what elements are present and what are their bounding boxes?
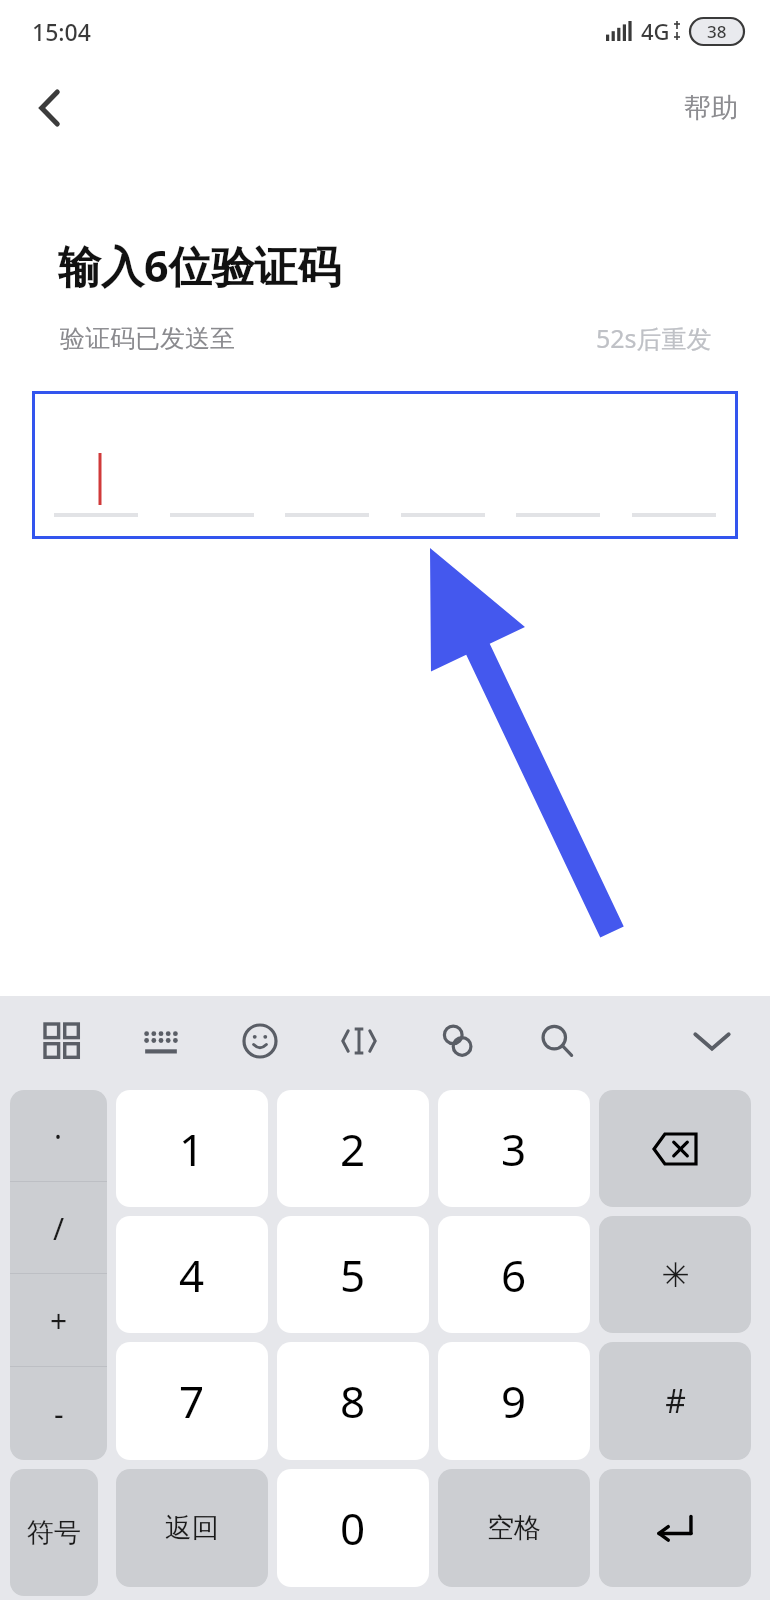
button[interactable]: 符号	[10, 1469, 98, 1596]
staticText: 1	[179, 1119, 205, 1179]
button[interactable]: +	[10, 1274, 107, 1367]
staticText: 2	[340, 1119, 366, 1179]
staticText: 4G	[641, 16, 670, 46]
button[interactable]: Enter	[599, 1469, 751, 1587]
staticText: 52s后重发	[596, 321, 712, 355]
staticText: /	[53, 1208, 65, 1249]
button[interactable]	[32, 391, 738, 539]
button[interactable]: Backspace	[599, 1090, 751, 1207]
staticText: 38	[707, 20, 727, 43]
staticText: 空格	[487, 1511, 541, 1545]
button[interactable]: 帮助	[672, 83, 750, 133]
button[interactable]: Move cursor	[327, 1009, 391, 1073]
button[interactable]: 4	[116, 1216, 268, 1333]
button[interactable]: Keyboard layout	[129, 1009, 193, 1073]
staticText: #	[665, 1379, 686, 1423]
button[interactable]: 0	[277, 1469, 429, 1587]
staticText: +	[50, 1300, 68, 1341]
button[interactable]: /	[10, 1182, 107, 1274]
staticText: 验证码已发送至	[60, 323, 235, 354]
staticText: 7	[179, 1371, 205, 1431]
staticText: 9	[501, 1371, 527, 1431]
staticText: ·	[54, 1116, 63, 1157]
staticText: 3	[501, 1119, 527, 1179]
button[interactable]: -	[10, 1367, 107, 1460]
staticText: 返回	[165, 1511, 219, 1545]
button[interactable]: 空格	[438, 1469, 590, 1587]
button[interactable]: 返回	[116, 1469, 268, 1587]
staticText: 4	[179, 1245, 205, 1305]
button[interactable]: 2	[277, 1090, 429, 1207]
staticText: 15:04	[32, 16, 91, 47]
button[interactable]: 52s后重发	[596, 321, 712, 355]
button[interactable]: Search	[525, 1009, 589, 1073]
button[interactable]: 9	[438, 1342, 590, 1460]
button[interactable]: 8	[277, 1342, 429, 1460]
button[interactable]: 5	[277, 1216, 429, 1333]
button[interactable]: Emoji	[228, 1009, 292, 1073]
button[interactable]: Clipboard	[426, 1009, 490, 1073]
staticText: 符号	[27, 1516, 81, 1550]
button[interactable]: ✳	[599, 1216, 751, 1333]
button[interactable]: ·	[10, 1090, 107, 1182]
staticText: 0	[340, 1498, 366, 1558]
staticText: 5	[340, 1245, 366, 1305]
button[interactable]: 6	[438, 1216, 590, 1333]
staticText: -	[54, 1393, 64, 1434]
staticText: 输入6位验证码	[58, 236, 341, 295]
button[interactable]: 3	[438, 1090, 590, 1207]
staticText: 6	[501, 1245, 527, 1305]
button[interactable]: Apps	[30, 1009, 94, 1073]
button[interactable]: 1	[116, 1090, 268, 1207]
button[interactable]: Back	[18, 76, 82, 140]
staticText: ✳	[661, 1255, 690, 1295]
button[interactable]: 7	[116, 1342, 268, 1460]
staticText: 8	[340, 1371, 366, 1431]
staticText: 帮助	[684, 91, 738, 125]
button[interactable]: Hide keyboard	[680, 1009, 744, 1073]
button[interactable]: #	[599, 1342, 751, 1460]
